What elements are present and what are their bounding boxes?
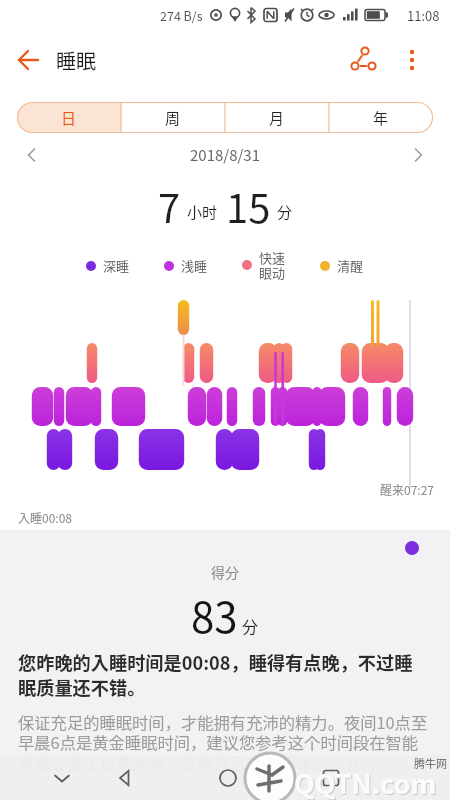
- staticText: 得分: [211, 562, 239, 582]
- staticText: 保证充足的睡眠时间，才能拥有充沛的精力。夜间10点至早晨6点是黄金睡眠时间，建议…: [18, 710, 432, 775]
- staticText: 分: [277, 201, 293, 223]
- button[interactable]: [38, 755, 86, 800]
- staticText: 睡眠: [56, 46, 96, 75]
- staticText: QQTN.com: [294, 763, 437, 800]
- button[interactable]: [340, 37, 386, 83]
- button[interactable]: [0, 32, 56, 88]
- staticText: 清醒: [337, 256, 364, 275]
- button[interactable]: [402, 139, 434, 171]
- staticText: 快速 眼动: [259, 248, 286, 282]
- staticText: 274 B/s: [160, 6, 203, 24]
- button[interactable]: 月: [225, 102, 329, 133]
- staticText: QQTN.com: [295, 764, 438, 800]
- staticText: 15: [226, 177, 271, 235]
- staticText: 7: [158, 177, 181, 235]
- staticText: 83: [191, 584, 238, 645]
- button[interactable]: [390, 38, 434, 82]
- staticText: 腾牛网: [414, 755, 447, 771]
- staticText: 月: [269, 107, 285, 129]
- button[interactable]: 日: [17, 102, 121, 133]
- staticText: 2018/8/31: [48, 144, 402, 166]
- button[interactable]: [307, 755, 355, 800]
- staticText: 入睡00:08: [18, 509, 72, 526]
- staticText: 分: [242, 614, 259, 637]
- button[interactable]: [204, 755, 252, 800]
- staticText: 11:08: [407, 6, 440, 25]
- button[interactable]: 周: [121, 102, 225, 133]
- staticText: 醒来07:27: [380, 481, 434, 498]
- staticText: 日: [61, 107, 77, 129]
- staticText: 周: [165, 107, 181, 129]
- staticText: 小时: [187, 201, 218, 223]
- staticText: 浅睡: [181, 256, 208, 275]
- button[interactable]: [101, 755, 149, 800]
- button[interactable]: [16, 139, 48, 171]
- staticText: 年: [373, 107, 389, 129]
- staticText: 深睡: [103, 256, 130, 275]
- staticText: 您昨晚的入睡时间是00:08，睡得有点晚，不过睡眠质量还不错。: [18, 649, 422, 700]
- button[interactable]: 年: [329, 102, 433, 133]
